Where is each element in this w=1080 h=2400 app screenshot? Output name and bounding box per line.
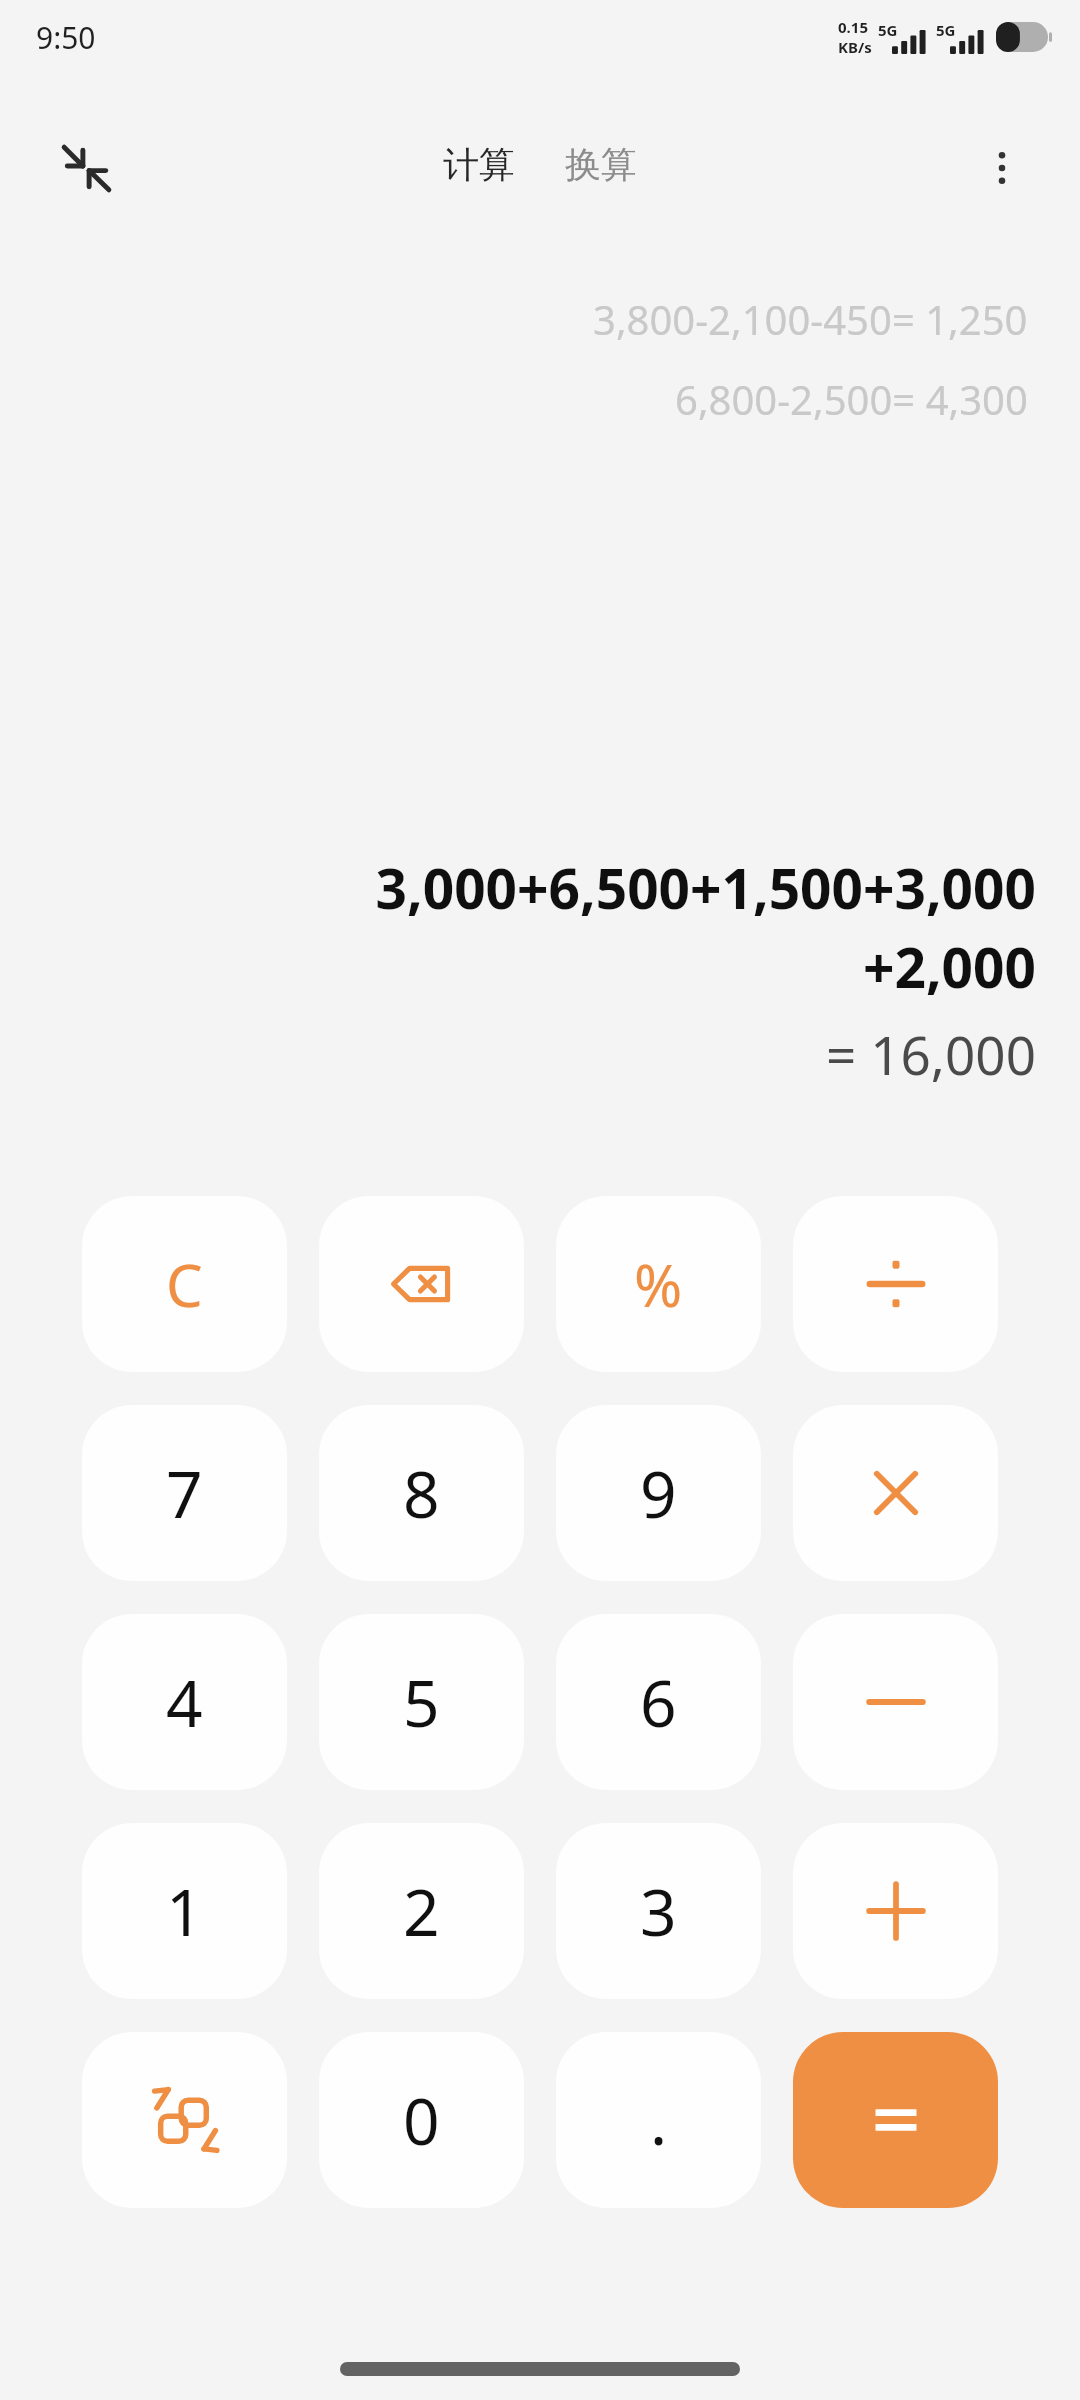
staticText: 9 <box>640 1450 677 1537</box>
button[interactable]: 3,800-2,100-450= 1,250 <box>593 292 1028 346</box>
staticText: 1 <box>166 1868 203 1955</box>
button[interactable]: 8 <box>319 1405 524 1581</box>
staticText: 6 <box>640 1659 677 1746</box>
button[interactable]: 3 <box>556 1823 761 1999</box>
staticText: 8 <box>403 1450 440 1537</box>
staticText: C <box>166 1245 203 1324</box>
staticText: 2 <box>403 1868 440 1955</box>
button[interactable]: 4 <box>82 1614 287 1790</box>
button[interactable]: Equals <box>793 2032 998 2208</box>
staticText: 5G <box>936 20 956 40</box>
button[interactable]: 9 <box>556 1405 761 1581</box>
button[interactable]: . <box>556 2032 761 2208</box>
button[interactable]: 6,800-2,500= 4,300 <box>675 372 1028 426</box>
staticText: = 16,000 <box>826 1018 1036 1090</box>
staticText: 3,000+6,500+1,500+3,000 <box>375 850 1036 925</box>
button[interactable]: 5 <box>319 1614 524 1790</box>
staticText: 3,800-2,100-450= 1,250 <box>593 292 1028 346</box>
button[interactable]: 换算 <box>553 132 649 197</box>
staticText: % <box>634 1245 683 1324</box>
button[interactable]: Percent <box>556 1196 761 1372</box>
button[interactable]: 7 <box>82 1405 287 1581</box>
button[interactable]: 1 <box>82 1823 287 1999</box>
staticText: . <box>650 2077 668 2164</box>
button[interactable]: Minus <box>793 1614 998 1790</box>
staticText: 6,800-2,500= 4,300 <box>675 372 1028 426</box>
button[interactable]: Collapse <box>48 130 124 206</box>
staticText: 5G <box>878 20 898 40</box>
staticText: 9:50 <box>36 17 96 58</box>
staticText: 5 <box>403 1659 440 1746</box>
staticText: 计算 <box>443 142 515 187</box>
button[interactable]: Backspace <box>319 1196 524 1372</box>
button[interactable]: More options <box>964 130 1040 206</box>
button[interactable]: 0 <box>319 2032 524 2208</box>
button[interactable]: Clear <box>82 1196 287 1372</box>
staticText: +2,000 <box>863 929 1036 1004</box>
button[interactable]: 6 <box>556 1614 761 1790</box>
staticText: 0.15 <box>838 17 868 37</box>
staticText: 0 <box>403 2077 440 2164</box>
button[interactable]: Divide <box>793 1196 998 1372</box>
button[interactable]: 2 <box>319 1823 524 1999</box>
staticText: 3 <box>640 1868 677 1955</box>
button[interactable]: Multiply <box>793 1405 998 1581</box>
staticText: KB/s <box>838 37 872 57</box>
button[interactable]: 计算 <box>431 132 527 197</box>
staticText: 换算 <box>565 142 637 187</box>
button[interactable]: Plus <box>793 1823 998 1999</box>
staticText: 7 <box>166 1450 203 1537</box>
button[interactable]: Unit conversion <box>82 2032 287 2208</box>
staticText: 4 <box>166 1659 203 1746</box>
